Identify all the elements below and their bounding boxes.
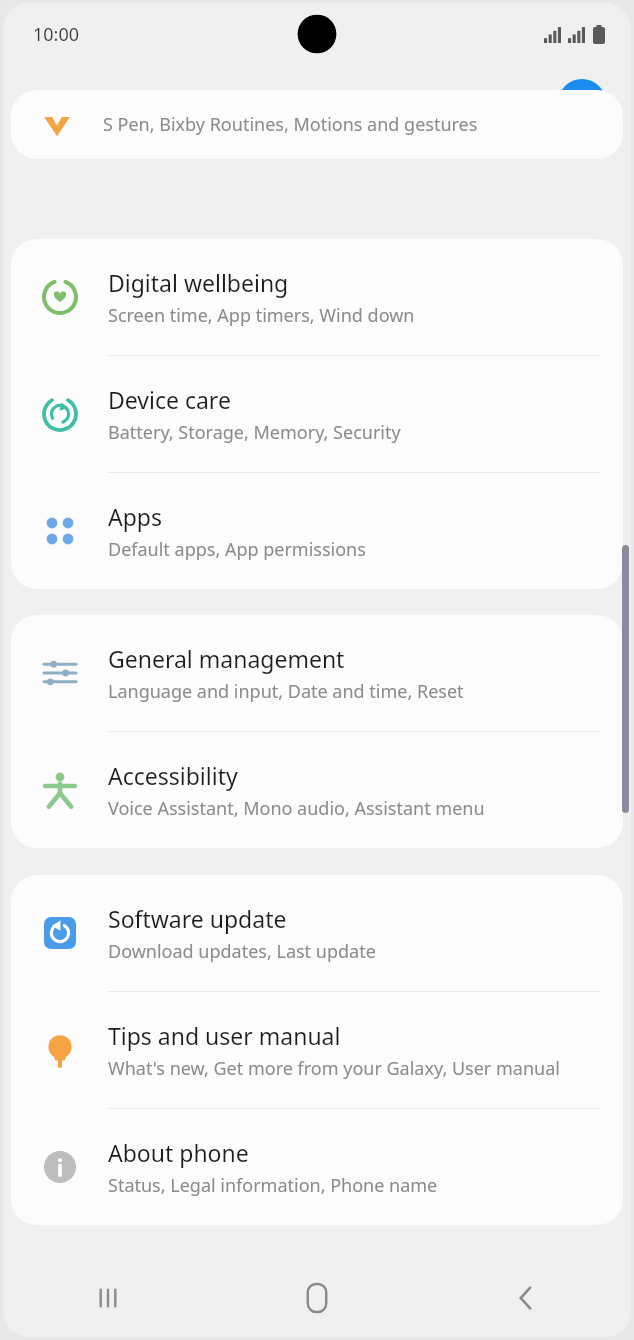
button[interactable]: Search [492, 79, 540, 127]
staticText: 10:00 [33, 22, 80, 47]
button[interactable]: Device care [11, 356, 623, 472]
staticText: Voice Assistant, Mono audio, Assistant m… [108, 796, 485, 821]
staticText: Language and input, Date and time, Reset [108, 679, 464, 704]
button[interactable]: S Pen, Bixby Routines, Motions and gestu… [11, 90, 623, 159]
button[interactable]: Back [483, 1259, 569, 1337]
staticText: S Pen, Bixby Routines, Motions and gestu… [103, 112, 478, 137]
button[interactable]: General management [11, 615, 623, 731]
staticText: Screen time, App timers, Wind down [108, 303, 415, 328]
staticText: Software update [108, 903, 287, 934]
staticText: General management [108, 643, 345, 674]
button[interactable]: Home [274, 1259, 360, 1337]
staticText: Apps [108, 501, 163, 532]
staticText: Device care [108, 384, 231, 415]
button[interactable]: Tips and user manual [11, 992, 623, 1108]
button[interactable]: Recents [65, 1259, 151, 1337]
button[interactable]: Account [558, 79, 606, 127]
staticText: Status, Legal information, Phone name [108, 1173, 438, 1198]
button[interactable]: Software update [11, 875, 623, 991]
staticText: Settings [39, 84, 146, 122]
staticText: Download updates, Last update [108, 939, 376, 964]
staticText: Default apps, App permissions [108, 537, 366, 562]
staticText: Digital wellbeing [108, 267, 289, 298]
staticText: Accessibility [108, 760, 238, 791]
staticText: What's new, Get more from your Galaxy, U… [108, 1056, 560, 1081]
button[interactable]: Apps [11, 473, 623, 589]
button[interactable]: Accessibility [11, 732, 623, 848]
staticText: Battery, Storage, Memory, Security [108, 420, 401, 445]
staticText: About phone [108, 1137, 249, 1168]
button[interactable]: About phone [11, 1109, 623, 1225]
button[interactable]: Digital wellbeing [11, 239, 623, 355]
staticText: Tips and user manual [108, 1020, 341, 1051]
